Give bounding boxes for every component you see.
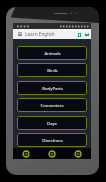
button[interactable]: Connectors [17, 98, 87, 112]
button[interactable]: BodyParts [17, 81, 87, 95]
staticText: Directions [42, 137, 63, 143]
staticText: Animals [44, 50, 61, 56]
button[interactable]: Days [17, 116, 87, 130]
staticText: BodyParts [42, 85, 63, 91]
staticText: Learn English [25, 31, 55, 37]
button[interactable]: Favorites [39, 148, 65, 159]
button[interactable]: Home [13, 148, 39, 159]
staticText: Days [47, 120, 57, 126]
staticText: Birds [47, 67, 58, 73]
staticText: Connectors [40, 102, 64, 108]
button[interactable]: Birds [17, 63, 87, 77]
button[interactable]: Directions [17, 133, 87, 147]
button[interactable]: Settings [65, 148, 91, 159]
button[interactable]: Animals [17, 46, 87, 60]
button[interactable]: Open navigation menu [13, 29, 91, 39]
button[interactable]: Messages [84, 32, 89, 37]
other: Open navigation menu [18, 32, 22, 36]
button[interactable]: Lessons [77, 32, 82, 37]
